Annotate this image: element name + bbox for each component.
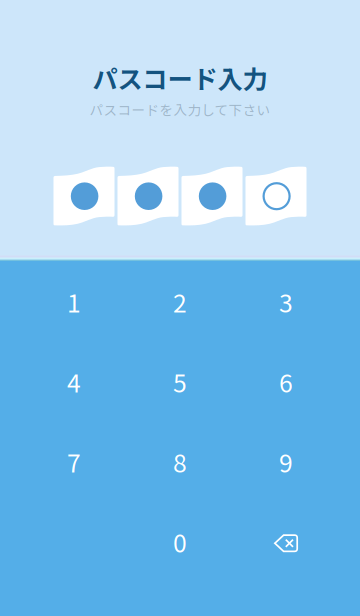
button[interactable]: 4	[21, 342, 127, 422]
staticText: 2	[173, 284, 187, 320]
button[interactable]: 1	[21, 262, 127, 342]
button[interactable]: Delete	[233, 502, 339, 582]
button[interactable]: 7	[21, 422, 127, 502]
staticText: パスコード入力	[92, 59, 267, 96]
staticText: 4	[67, 364, 81, 400]
staticText: 3	[279, 284, 293, 320]
staticText: 1	[67, 284, 81, 320]
button[interactable]: 6	[233, 342, 339, 422]
button[interactable]: 9	[233, 422, 339, 502]
button[interactable]: 5	[127, 342, 233, 422]
button[interactable]: 8	[127, 422, 233, 502]
button[interactable]: 2	[127, 262, 233, 342]
staticText: 5	[173, 364, 187, 400]
staticText: 6	[279, 364, 293, 400]
button[interactable]: 0	[127, 502, 233, 582]
staticText: 9	[279, 444, 293, 480]
staticText: 8	[173, 444, 187, 480]
staticText: パスコードを入力して下さい	[89, 99, 270, 119]
staticText: 0	[173, 524, 187, 560]
staticText: 7	[67, 444, 81, 480]
button[interactable]: 3	[233, 262, 339, 342]
